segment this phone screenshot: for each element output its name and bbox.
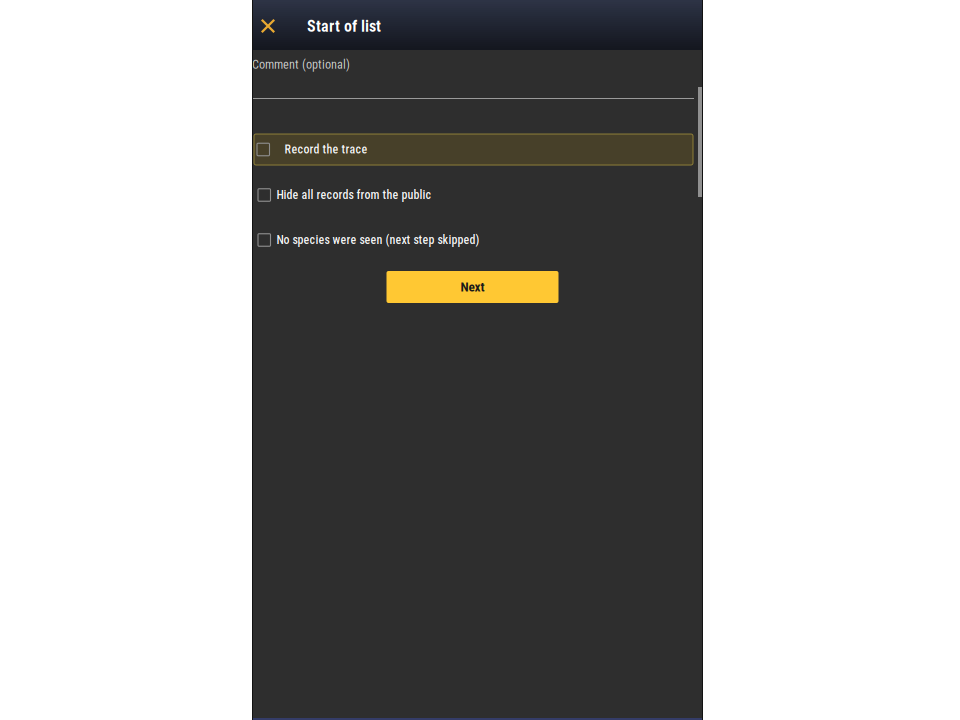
button[interactable]: Next — [386, 271, 558, 303]
button[interactable]: Hide all records from the public — [252, 188, 693, 202]
staticText: Next — [460, 279, 484, 295]
button[interactable]: Record the trace — [252, 134, 693, 165]
staticText: No species were seen (next step skipped) — [276, 233, 479, 247]
staticText: Hide all records from the public — [276, 188, 431, 202]
staticText: Start of list — [307, 17, 381, 36]
staticText: Record the trace — [284, 142, 367, 157]
button[interactable]: No species were seen (next step skipped) — [252, 233, 693, 247]
staticText: Comment (optional) — [252, 57, 350, 72]
button[interactable]: Close — [254, 0, 282, 50]
